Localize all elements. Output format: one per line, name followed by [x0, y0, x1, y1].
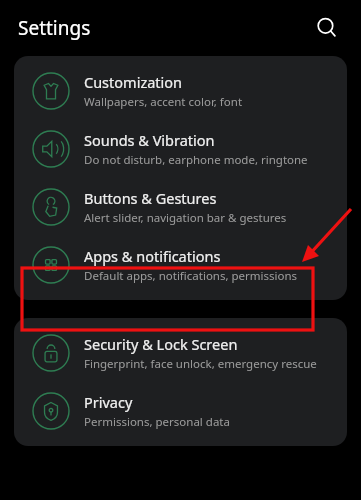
- staticText: Security & Lock Screen: [84, 334, 238, 354]
- staticText: Buttons & Gestures: [84, 188, 217, 208]
- staticText: Privacy: [84, 392, 133, 412]
- button[interactable]: Privacy: [14, 382, 347, 440]
- staticText: Default apps, notifications, permissions: [84, 268, 298, 284]
- button[interactable]: Apps & notifications: [14, 236, 347, 294]
- staticText: Alert slider, navigation bar & gestures: [84, 210, 287, 226]
- staticText: Permissions, personal data: [84, 414, 230, 430]
- staticText: Wallpapers, accent color, font: [84, 94, 243, 110]
- staticText: Do not disturb, earphone mode, ringtone: [84, 152, 308, 168]
- button[interactable]: Buttons & Gestures: [14, 178, 347, 236]
- staticText: Fingerprint, face unlock, emergency resc…: [84, 356, 317, 372]
- button[interactable]: Search: [307, 8, 347, 48]
- staticText: Sounds & Vibration: [84, 130, 215, 150]
- button[interactable]: Sounds & Vibration: [14, 120, 347, 178]
- staticText: Apps & notifications: [84, 246, 221, 266]
- staticText: Settings: [18, 15, 91, 41]
- staticText: Customization: [84, 72, 183, 92]
- button[interactable]: Customization: [14, 62, 347, 120]
- button[interactable]: Security & Lock Screen: [14, 324, 347, 382]
